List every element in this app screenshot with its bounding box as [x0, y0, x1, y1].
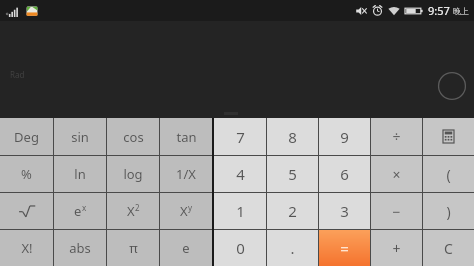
staticText: 2 — [288, 201, 297, 221]
staticText: ÷ — [392, 127, 401, 146]
staticText: 1 — [236, 201, 245, 221]
button[interactable]: 2 — [267, 193, 318, 229]
button[interactable]: Deg — [0, 118, 53, 155]
button[interactable]: π — [107, 230, 159, 266]
staticText: 晚上 — [453, 6, 469, 16]
button[interactable]: 8 — [267, 118, 318, 155]
button[interactable]: = — [319, 230, 370, 266]
button[interactable]: 7 — [214, 118, 266, 155]
other: Square root — [0, 193, 53, 229]
staticText: % — [21, 165, 32, 183]
button[interactable]: Clear — [436, 70, 468, 102]
staticText: π — [129, 239, 138, 257]
staticText: Rad — [10, 69, 25, 80]
button[interactable]: + — [371, 230, 422, 266]
staticText: 6 — [340, 164, 349, 184]
staticText: . — [290, 238, 295, 258]
staticText: 7 — [236, 127, 245, 147]
button[interactable]: e — [160, 230, 212, 266]
staticText: C — [444, 239, 453, 258]
button[interactable]: 5 — [267, 156, 318, 192]
staticText: ( — [446, 165, 451, 184]
staticText: abs — [69, 239, 91, 257]
button[interactable]: ÷ — [371, 118, 422, 155]
button[interactable]: . — [267, 230, 318, 266]
staticText: sin — [71, 128, 89, 146]
button[interactable]: % — [0, 156, 53, 192]
staticText: y — [188, 202, 193, 213]
staticText: 2 — [135, 202, 140, 213]
button[interactable]: 4 — [214, 156, 266, 192]
button[interactable]: log — [107, 156, 159, 192]
button[interactable]: History — [423, 118, 474, 155]
staticText: X — [127, 202, 135, 220]
staticText: 9:57 — [428, 3, 450, 18]
staticText: ln — [74, 165, 86, 183]
staticText: e — [74, 202, 82, 220]
button[interactable]: C — [423, 230, 474, 266]
staticText: tan — [176, 128, 197, 146]
staticText: 3 — [340, 201, 349, 221]
button[interactable]: 6 — [319, 156, 370, 192]
button[interactable]: 9 — [319, 118, 370, 155]
button[interactable]: ( — [423, 156, 474, 192]
staticText: + — [392, 239, 401, 258]
staticText: Deg — [14, 128, 39, 146]
staticText: 0 — [236, 238, 245, 258]
staticText: X! — [21, 239, 33, 257]
button[interactable]: Square root — [0, 193, 53, 229]
button[interactable]: 0 — [214, 230, 266, 266]
button[interactable]: X — [107, 193, 159, 229]
staticText: 8 — [288, 127, 297, 147]
button[interactable]: abs — [54, 230, 106, 266]
button[interactable]: cos — [107, 118, 159, 155]
staticText: ) — [446, 202, 451, 221]
staticText: × — [392, 165, 401, 184]
button[interactable]: tan — [160, 118, 212, 155]
button[interactable]: × — [371, 156, 422, 192]
button[interactable]: X — [160, 193, 212, 229]
staticText: 9 — [340, 127, 349, 147]
staticText: 5 — [288, 164, 297, 184]
button[interactable]: sin — [54, 118, 106, 155]
button[interactable]: 1/X — [160, 156, 212, 192]
other: History — [423, 118, 474, 155]
staticText: − — [392, 202, 401, 221]
button[interactable]: e — [54, 193, 106, 229]
staticText: x — [82, 202, 87, 213]
button[interactable]: − — [371, 193, 422, 229]
staticText: e — [182, 239, 190, 257]
button[interactable]: ln — [54, 156, 106, 192]
button[interactable]: ) — [423, 193, 474, 229]
staticText: X — [180, 202, 188, 220]
staticText: 1/X — [176, 165, 196, 183]
staticText: cos — [123, 128, 144, 146]
staticText: = — [340, 238, 349, 258]
button[interactable]: X! — [0, 230, 53, 266]
staticText: log — [123, 165, 143, 183]
button[interactable]: 1 — [214, 193, 266, 229]
staticText: 4 — [236, 164, 245, 184]
button[interactable]: 3 — [319, 193, 370, 229]
